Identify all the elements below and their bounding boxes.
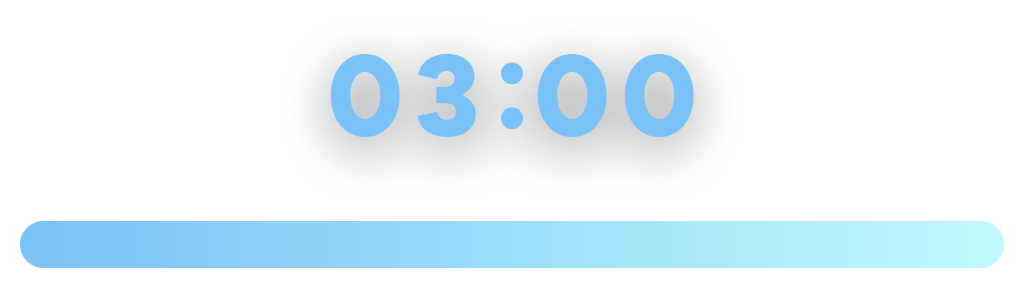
button[interactable]: Timer progress xyxy=(0,221,1024,268)
staticText: 03 xyxy=(327,27,479,165)
button[interactable]: Time remaining, 3 minutes xyxy=(327,0,696,165)
staticText: 00 xyxy=(534,27,696,165)
